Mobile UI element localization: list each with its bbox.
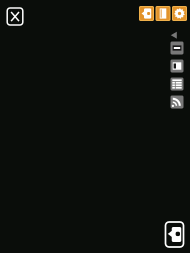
button[interactable]: Settings xyxy=(172,6,187,21)
button[interactable]: Collapse sidebar xyxy=(171,32,177,39)
button[interactable]: Book xyxy=(155,6,170,21)
button[interactable]: Close xyxy=(7,8,23,25)
button[interactable]: Table xyxy=(170,77,183,90)
button[interactable]: Card xyxy=(165,222,183,247)
button[interactable]: Broadcast xyxy=(170,95,183,108)
button[interactable]: Card xyxy=(139,6,154,21)
button[interactable]: Keyboard xyxy=(170,41,183,54)
button[interactable]: Sidebar xyxy=(170,59,183,72)
